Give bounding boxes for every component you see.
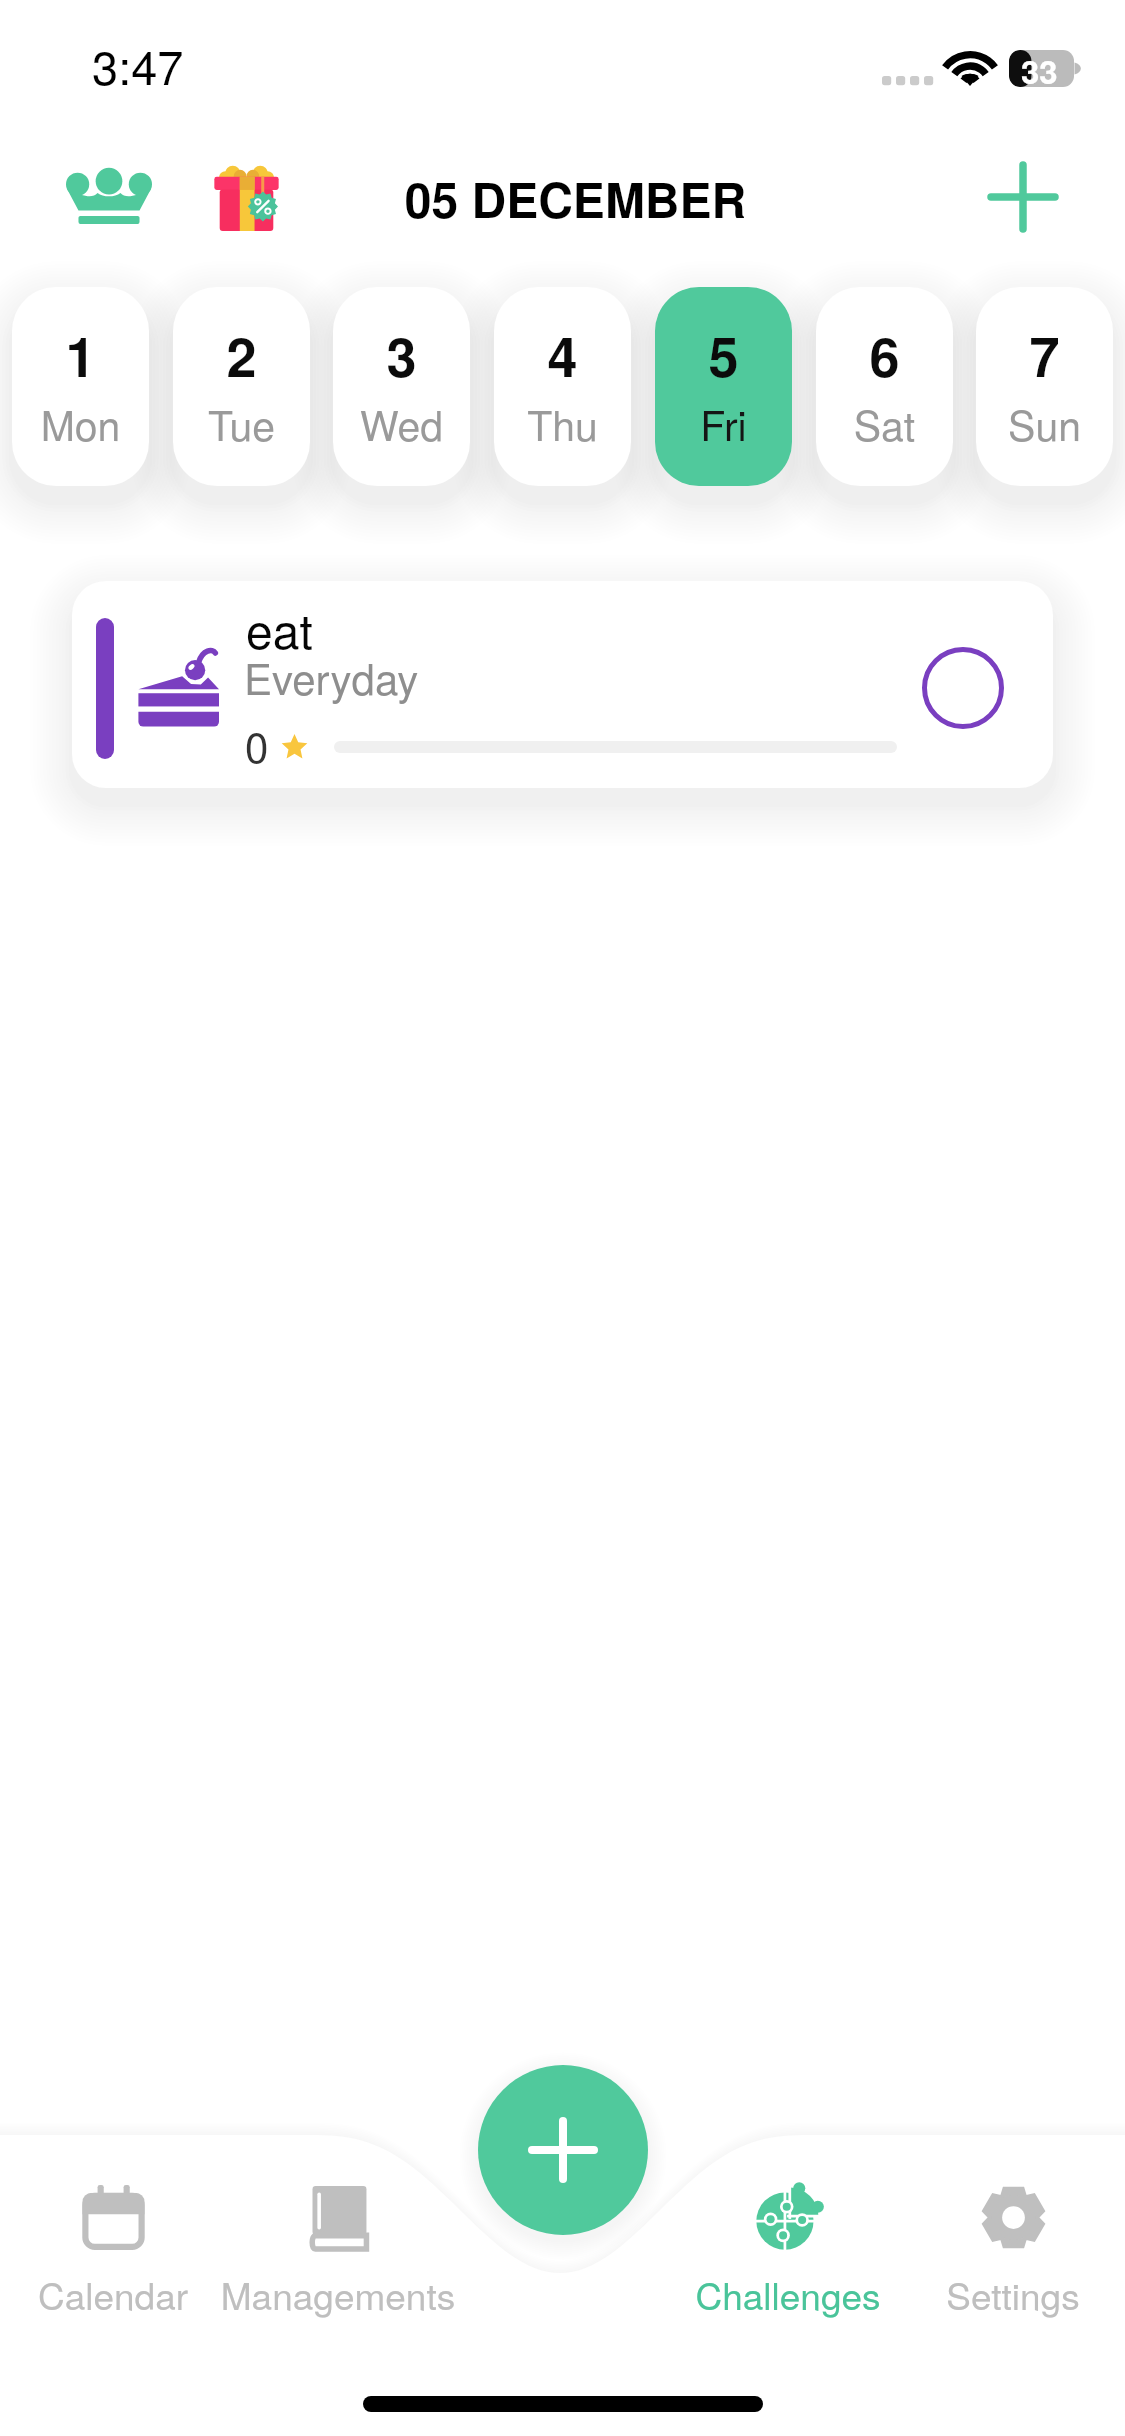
staticText: Tue bbox=[173, 394, 310, 453]
staticText: 05 DECEMBER bbox=[13, 164, 1125, 233]
staticText: 5 bbox=[655, 316, 792, 393]
staticText: Sat bbox=[816, 394, 953, 453]
staticText: 33 bbox=[1021, 47, 1058, 84]
staticText: Settings bbox=[873, 2268, 1125, 2321]
staticText: Mon bbox=[12, 394, 149, 453]
staticText: 4 bbox=[494, 316, 631, 393]
button[interactable]: eat bbox=[72, 581, 1053, 788]
staticText: Challenges bbox=[648, 2268, 928, 2321]
staticText: Managements bbox=[198, 2268, 478, 2321]
button[interactable]: Challenges bbox=[648, 2170, 928, 2325]
button[interactable]: Settings bbox=[873, 2170, 1125, 2325]
button[interactable]: Premium bbox=[46, 148, 171, 243]
button[interactable]: 1 bbox=[12, 287, 149, 486]
button[interactable]: 5 bbox=[655, 287, 792, 486]
button[interactable]: 7 bbox=[976, 287, 1113, 486]
button[interactable]: Managements bbox=[198, 2170, 478, 2325]
button[interactable]: 4 bbox=[494, 287, 631, 486]
button[interactable]: 6 bbox=[816, 287, 953, 486]
staticText: 3 bbox=[333, 316, 470, 393]
button[interactable]: Add bbox=[478, 2065, 648, 2235]
button[interactable]: Add habit bbox=[958, 142, 1088, 252]
staticText: Everyday bbox=[244, 647, 419, 707]
button[interactable]: Calendar bbox=[0, 2170, 253, 2325]
staticText: 1 bbox=[12, 316, 149, 393]
staticText: 6 bbox=[816, 316, 953, 393]
button[interactable]: Gifts bbox=[196, 146, 296, 246]
staticText: Fri bbox=[655, 394, 792, 453]
staticText: Thu bbox=[494, 394, 631, 453]
staticText: eat bbox=[246, 594, 313, 663]
staticText: Wed bbox=[333, 394, 470, 453]
button[interactable]: Mark habit complete bbox=[903, 628, 1023, 748]
staticText: 2 bbox=[173, 316, 310, 393]
staticText: Calendar bbox=[0, 2268, 253, 2321]
staticText: 0 bbox=[245, 715, 269, 775]
staticText: 3:47 bbox=[92, 31, 184, 98]
staticText: Sun bbox=[976, 394, 1113, 453]
button[interactable]: 2 bbox=[173, 287, 310, 486]
button[interactable]: 3 bbox=[333, 287, 470, 486]
staticText: 7 bbox=[976, 316, 1113, 393]
